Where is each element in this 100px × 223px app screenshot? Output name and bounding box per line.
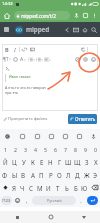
button[interactable]: 2	[10, 144, 20, 155]
button[interactable]: Г	[55, 155, 64, 168]
staticText: Ь	[65, 184, 69, 192]
button[interactable]: Italic	[11, 45, 19, 53]
button[interactable]: Enter	[87, 196, 98, 205]
button[interactable]: Щ	[73, 155, 82, 168]
button[interactable]: С	[26, 181, 35, 194]
button[interactable]: О	[55, 168, 64, 181]
button[interactable]: Bullets	[35, 55, 43, 63]
button[interactable]: Voice search	[72, 11, 81, 20]
button[interactable]: В	[19, 168, 28, 181]
button[interactable]: Т	[53, 181, 62, 194]
button[interactable]: Back	[67, 211, 100, 223]
button[interactable]: Notifications	[80, 25, 89, 34]
button[interactable]: 1	[0, 144, 10, 155]
button[interactable]: Code	[3, 64, 11, 72]
button[interactable]: .	[77, 194, 85, 207]
button[interactable]: Align	[43, 55, 51, 63]
button[interactable]: Search	[89, 25, 98, 34]
button[interactable]: К	[28, 155, 37, 168]
button[interactable]: ?123	[1, 196, 12, 205]
button[interactable]: Recents	[0, 211, 34, 223]
button[interactable]: Emoji	[13, 194, 22, 207]
button[interactable]: Д	[73, 168, 82, 181]
button[interactable]: Mention	[81, 55, 89, 63]
button[interactable]: 8	[70, 144, 80, 155]
button[interactable]: Shift	[0, 181, 10, 194]
button[interactable]: Themes	[44, 129, 58, 144]
button[interactable]: Х	[91, 155, 100, 168]
button[interactable]: Ы	[10, 168, 19, 181]
button[interactable]: Font	[3, 55, 11, 63]
button[interactable]: Ф	[0, 168, 10, 181]
button[interactable]: Emoji	[89, 55, 97, 63]
staticText: Э	[93, 171, 98, 179]
staticText: 3	[24, 146, 27, 153]
staticText: Щ	[74, 158, 81, 166]
button[interactable]: Я	[10, 181, 18, 194]
button[interactable]: 3	[20, 144, 30, 155]
button[interactable]: Н	[46, 155, 55, 168]
button[interactable]: Ответить	[68, 114, 97, 124]
staticText: Н	[48, 158, 53, 166]
button[interactable]: 7	[60, 144, 70, 155]
button[interactable]: Ш	[64, 155, 73, 168]
button[interactable]: Stickers	[15, 129, 30, 144]
button[interactable]: Clipboard	[58, 129, 72, 144]
staticText: З	[85, 158, 89, 166]
button[interactable]: Й	[0, 155, 10, 168]
button[interactable]: П	[37, 168, 46, 181]
button[interactable]: Font size	[19, 55, 27, 63]
button[interactable]: Back	[62, 25, 71, 34]
button[interactable]: Л	[64, 168, 73, 181]
button[interactable]: mipped.com/t/2	[14, 11, 70, 20]
button[interactable]: Е	[37, 155, 46, 168]
button[interactable]: И	[44, 181, 53, 194]
button[interactable]: Clear format	[73, 55, 81, 63]
button[interactable]: Ц	[10, 155, 19, 168]
staticText: 4	[34, 146, 37, 153]
button[interactable]: Text color	[11, 55, 19, 63]
button[interactable]: Menu	[4, 27, 9, 32]
button[interactable]: М	[35, 181, 44, 194]
button[interactable]: Ю	[80, 181, 89, 194]
button[interactable]: Voice input	[86, 129, 100, 144]
button[interactable]: Прикрепить файлы	[3, 116, 48, 122]
staticText: 1	[4, 146, 7, 153]
button[interactable]: Backspace	[89, 181, 100, 194]
button[interactable]: Ж	[82, 168, 91, 181]
button[interactable]: Home	[2, 11, 12, 21]
button[interactable]: З	[82, 155, 91, 168]
button[interactable]: List	[27, 55, 35, 63]
button[interactable]: GIF	[30, 129, 44, 144]
button[interactable]: Settings	[72, 129, 86, 144]
staticText: В	[21, 171, 26, 179]
button[interactable]: Русский	[32, 196, 76, 205]
button[interactable]: Messages	[71, 25, 80, 34]
staticText: 9	[84, 146, 87, 153]
staticText: Д	[75, 171, 80, 179]
button[interactable]: Back	[0, 129, 15, 144]
button[interactable]: А	[28, 168, 37, 181]
button[interactable]: 6	[50, 144, 60, 155]
button[interactable]: Tabs	[81, 11, 90, 20]
button[interactable]: Э	[91, 168, 100, 181]
button[interactable]: Link	[20, 45, 28, 53]
button[interactable]: Р	[46, 168, 55, 181]
button[interactable]: Bold	[3, 45, 11, 53]
staticText: П	[39, 171, 44, 179]
button[interactable]: Ь	[62, 181, 71, 194]
button[interactable]: У	[19, 155, 28, 168]
button[interactable]: More options	[90, 11, 99, 20]
staticText: Иван сказал:	[9, 74, 32, 79]
staticText: Р	[49, 171, 53, 179]
button[interactable]: Image	[28, 45, 36, 53]
button[interactable]: 0	[90, 144, 100, 155]
button[interactable]: Ч	[18, 181, 26, 194]
button[interactable]: ,	[22, 194, 31, 207]
button[interactable]: Undo	[79, 45, 87, 53]
button[interactable]: 9	[80, 144, 90, 155]
button[interactable]: Home	[34, 211, 67, 223]
button[interactable]: 4	[30, 144, 40, 155]
button[interactable]: Б	[71, 181, 80, 194]
button[interactable]: 5	[40, 144, 50, 155]
